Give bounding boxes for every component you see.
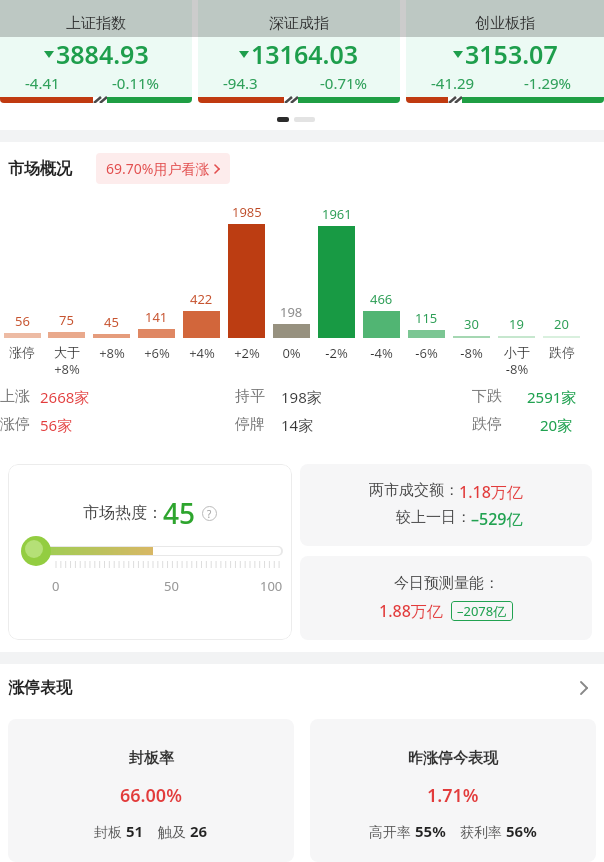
staticText: 深证成指: [269, 14, 329, 33]
staticText: 2668家: [40, 387, 90, 406]
staticText: 66.00%: [120, 783, 182, 808]
staticText: –2078亿: [457, 602, 507, 620]
staticText: 19: [509, 315, 524, 333]
staticText: +8%: [99, 344, 125, 362]
staticText: 1.18万亿: [459, 481, 523, 503]
button[interactable]: 市场热度：: [8, 464, 292, 640]
staticText: +4%: [189, 344, 215, 362]
staticText: 0%: [282, 344, 301, 362]
staticText: 50: [164, 577, 179, 595]
staticText: 1.88万亿: [379, 600, 443, 622]
staticText: 大于 +8%: [54, 344, 80, 377]
staticText: 1961: [322, 205, 352, 223]
staticText: 422: [190, 290, 213, 308]
staticText: 56家: [40, 415, 73, 434]
staticText: 100: [260, 577, 283, 595]
staticText: 创业板指: [475, 14, 535, 33]
staticText: 昨涨停今表现: [408, 749, 498, 768]
staticText: 198: [280, 303, 303, 321]
staticText: 触及: [158, 822, 190, 841]
staticText: 停牌: [235, 415, 265, 434]
staticText: +2%: [234, 344, 260, 362]
staticText: 56: [15, 312, 30, 330]
staticText: 45: [104, 313, 119, 331]
staticText: -6%: [415, 344, 438, 362]
staticText: 45: [163, 494, 196, 532]
staticText: 较上一日：: [396, 508, 471, 527]
staticText: 涨停: [0, 415, 30, 434]
staticText: 20家: [540, 415, 573, 434]
staticText: 涨停: [9, 344, 35, 360]
staticText: -4.41: [25, 73, 60, 93]
button[interactable]: 深证成指: [198, 0, 400, 103]
staticText: -0.71%: [320, 73, 368, 93]
button[interactable]: 69.70%用户看涨: [96, 153, 230, 184]
button[interactable]: 创业板指: [406, 0, 604, 103]
staticText: 封板率: [129, 749, 174, 768]
staticText: -2%: [325, 344, 348, 362]
staticText: 获利率: [460, 822, 506, 841]
staticText: 今日预测量能：: [394, 574, 499, 593]
staticText: -94.3: [223, 73, 258, 93]
staticText: 市场热度：: [83, 503, 163, 523]
staticText: 3153.07: [465, 37, 558, 71]
staticText: 51: [126, 821, 144, 841]
staticText: 两市成交额：: [369, 481, 459, 500]
staticText: -0.11%: [112, 73, 160, 93]
button[interactable]: 今日预测量能：: [300, 556, 592, 640]
staticText: -41.29: [431, 73, 475, 93]
staticText: ?: [207, 507, 212, 521]
staticText: 466: [370, 290, 393, 308]
staticText: 115: [415, 309, 438, 327]
staticText: 13164.03: [251, 37, 359, 71]
staticText: 30: [464, 315, 479, 333]
staticText: -4%: [370, 344, 393, 362]
staticText: 上涨: [0, 387, 30, 406]
staticText: –529亿: [471, 508, 523, 530]
button[interactable]: 上证指数: [0, 0, 192, 103]
button[interactable]: 涨停表现: [8, 674, 588, 702]
staticText: -8%: [460, 344, 483, 362]
button[interactable]: 两市成交额：: [300, 464, 592, 546]
staticText: 持平: [235, 387, 265, 406]
staticText: 1.71%: [427, 783, 479, 808]
staticText: 14家: [281, 415, 314, 434]
staticText: 跌停: [472, 415, 502, 434]
staticText: 55%: [415, 821, 446, 841]
staticText: -1.29%: [524, 73, 572, 93]
staticText: 上证指数: [66, 14, 126, 33]
staticText: 跌停: [549, 344, 575, 360]
staticText: 下跌: [472, 387, 502, 406]
staticText: 高开率: [369, 822, 415, 841]
staticText: 封板: [94, 822, 126, 841]
staticText: 2591家: [527, 387, 577, 406]
staticText: 141: [145, 308, 168, 326]
staticText: +6%: [144, 344, 170, 362]
button[interactable]: 昨涨停今表现: [310, 719, 596, 862]
button[interactable]: 封板率: [8, 719, 294, 862]
staticText: 20: [554, 315, 569, 333]
staticText: 涨停表现: [8, 678, 72, 698]
staticText: 69.70%用户看涨: [106, 159, 210, 178]
staticText: 1985: [232, 203, 262, 221]
staticText: 0: [52, 577, 60, 595]
staticText: 26: [190, 821, 208, 841]
staticText: 市场概况: [8, 159, 72, 179]
staticText: 小于 -8%: [504, 344, 530, 377]
staticText: 56%: [506, 821, 537, 841]
staticText: 75: [59, 311, 74, 329]
staticText: 198家: [281, 387, 322, 406]
staticText: 3884.93: [56, 37, 149, 71]
